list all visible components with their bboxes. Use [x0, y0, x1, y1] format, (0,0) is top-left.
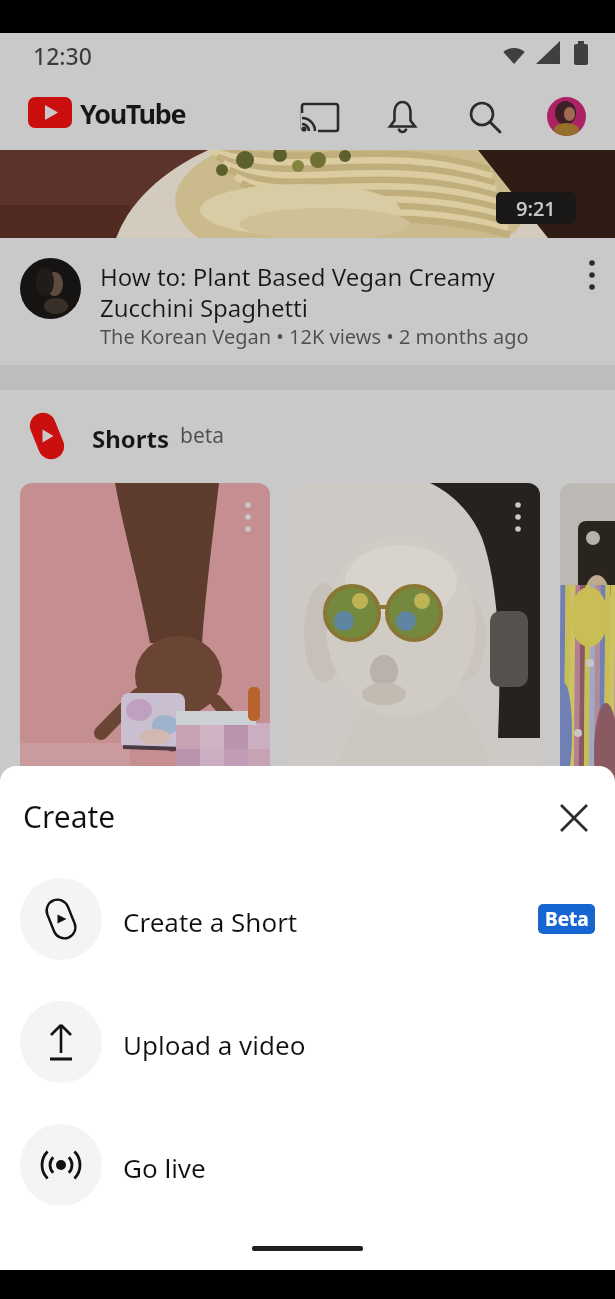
- button[interactable]: [0, 238, 615, 365]
- button[interactable]: [0, 150, 615, 238]
- button[interactable]: [20, 483, 270, 923]
- button[interactable]: Go live: [0, 1124, 615, 1206]
- button[interactable]: [556, 800, 592, 836]
- staticText: Shorts: [92, 422, 170, 455]
- staticText: beta: [180, 421, 225, 450]
- staticText: The Korean Vegan • 12K views • 2 months …: [100, 323, 529, 350]
- button[interactable]: [560, 483, 615, 923]
- staticText: Go live: [123, 1150, 206, 1185]
- button[interactable]: [290, 483, 540, 923]
- button[interactable]: [301, 101, 339, 133]
- staticText: Create a Short: [123, 904, 298, 939]
- staticText: 12:30: [33, 40, 92, 71]
- button[interactable]: [28, 97, 72, 128]
- button[interactable]: [582, 258, 602, 294]
- button[interactable]: [547, 97, 586, 136]
- staticText: Upload a video: [123, 1027, 306, 1062]
- button[interactable]: Upload a video: [0, 1001, 615, 1083]
- staticText: 9:21: [516, 195, 556, 222]
- button[interactable]: [468, 100, 502, 134]
- staticText: Beta: [545, 906, 589, 932]
- staticText: Zucchini Spaghetti: [100, 291, 308, 324]
- staticText: How to: Plant Based Vegan Creamy: [100, 260, 495, 293]
- staticText: Create: [23, 796, 116, 837]
- staticText: YouTube: [80, 95, 186, 132]
- button[interactable]: Create a Short: [0, 878, 615, 960]
- button[interactable]: [385, 98, 420, 136]
